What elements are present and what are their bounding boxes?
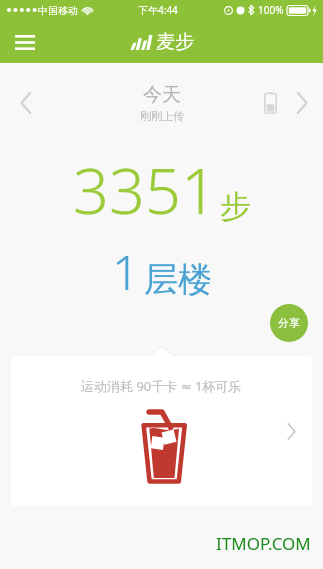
button[interactable]: 运动消耗 90千卡 ≈ 1杯可乐 (11, 356, 312, 506)
staticText: 运动消耗 90千卡 ≈ 1杯可乐 (81, 377, 242, 395)
staticText: 层楼 (144, 258, 212, 301)
button[interactable]: Device battery (255, 88, 285, 118)
staticText: 100% (258, 3, 284, 17)
staticText: 刚刚上传 (140, 109, 184, 123)
staticText: 1 (112, 239, 140, 304)
staticText: 分享 (278, 316, 300, 330)
staticText: 麦步 (156, 30, 194, 54)
staticText: 步 (220, 187, 251, 226)
button[interactable]: Previous day (6, 83, 46, 123)
button[interactable]: 分享 (270, 304, 308, 342)
staticText: 3351 (73, 147, 217, 233)
staticText: ITMOP.COM (216, 532, 311, 555)
button[interactable]: Next day (285, 86, 319, 120)
staticText: 中国移动 (38, 4, 78, 17)
staticText: 下午4:44 (138, 3, 178, 17)
button[interactable]: Menu (6, 23, 44, 61)
staticText: 今天 (143, 83, 181, 107)
